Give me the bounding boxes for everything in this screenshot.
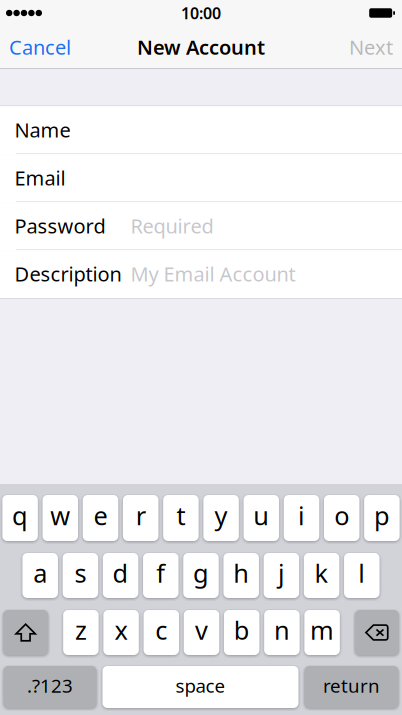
button[interactable]: v: [184, 610, 219, 655]
staticText: e: [93, 499, 107, 532]
button[interactable]: b: [224, 610, 259, 655]
staticText: v: [195, 613, 208, 647]
staticText: s: [74, 556, 86, 590]
staticText: return: [323, 673, 380, 698]
staticText: o: [334, 499, 349, 532]
button[interactable]: e: [83, 495, 118, 541]
button[interactable]: Password: [0, 202, 402, 250]
button[interactable]: h: [223, 553, 259, 598]
button[interactable]: d: [103, 553, 138, 598]
staticText: q: [12, 499, 28, 532]
button[interactable]: l: [344, 553, 379, 598]
button[interactable]: a: [22, 553, 58, 598]
staticText: g: [193, 556, 209, 590]
staticText: z: [75, 613, 87, 647]
staticText: p: [374, 499, 390, 532]
staticText: j: [278, 556, 285, 590]
staticText: Description: [14, 260, 121, 287]
button[interactable]: w: [42, 495, 78, 541]
staticText: c: [155, 613, 167, 647]
staticText: Password: [14, 212, 105, 239]
button[interactable]: s: [63, 553, 98, 598]
staticText: Name: [14, 116, 70, 143]
staticText: .?123: [27, 673, 73, 698]
button[interactable]: o: [324, 495, 359, 541]
staticText: Email: [14, 164, 65, 191]
staticText: h: [233, 556, 249, 590]
button[interactable]: Cancel: [0, 26, 80, 68]
button[interactable]: Description: [0, 250, 402, 298]
button[interactable]: g: [183, 553, 219, 598]
button[interactable]: f: [143, 553, 179, 598]
staticText: l: [358, 556, 365, 590]
button[interactable]: r: [123, 495, 158, 541]
button[interactable]: n: [264, 610, 300, 655]
staticText: d: [113, 556, 129, 590]
button[interactable]: j: [264, 553, 299, 598]
staticText: x: [115, 613, 128, 647]
button[interactable]: m: [304, 610, 340, 655]
button[interactable]: z: [63, 610, 99, 655]
staticText: y: [215, 499, 228, 532]
button[interactable]: t: [163, 495, 199, 541]
button[interactable]: Next: [340, 26, 402, 68]
staticText: 10:00: [181, 2, 221, 24]
button[interactable]: q: [2, 495, 38, 541]
staticText: m: [310, 613, 334, 647]
button[interactable]: space: [102, 666, 298, 708]
button[interactable]: i: [284, 495, 319, 541]
staticText: space: [175, 673, 225, 698]
staticText: Required: [130, 212, 213, 239]
button[interactable]: Delete: [355, 610, 399, 655]
staticText: Next: [349, 34, 393, 60]
button[interactable]: Shift: [3, 610, 48, 655]
button[interactable]: p: [364, 495, 400, 541]
staticText: k: [315, 556, 329, 590]
staticText: Cancel: [9, 34, 71, 60]
button[interactable]: .?123: [3, 666, 96, 708]
staticText: t: [176, 499, 185, 532]
staticText: b: [234, 613, 250, 647]
staticText: i: [298, 499, 305, 532]
staticText: f: [156, 556, 165, 590]
button[interactable]: Email: [0, 154, 402, 202]
button[interactable]: k: [304, 553, 339, 598]
staticText: a: [33, 556, 47, 590]
staticText: New Account: [137, 34, 265, 60]
button[interactable]: return: [304, 666, 398, 708]
button[interactable]: Name: [0, 106, 402, 154]
staticText: u: [253, 499, 269, 532]
button[interactable]: x: [103, 610, 139, 655]
staticText: r: [136, 499, 146, 532]
staticText: w: [50, 499, 70, 532]
staticText: My Email Account: [130, 260, 295, 287]
button[interactable]: c: [144, 610, 179, 655]
button[interactable]: y: [203, 495, 239, 541]
staticText: n: [274, 613, 290, 647]
button[interactable]: u: [243, 495, 279, 541]
